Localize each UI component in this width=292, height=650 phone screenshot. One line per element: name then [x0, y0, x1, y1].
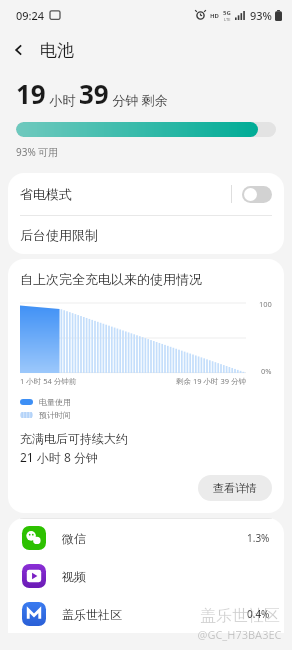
staticText: 5G — [223, 9, 231, 17]
staticText: LTE — [224, 17, 231, 22]
staticText: 自上次完全充电以来的使用情况 — [20, 271, 202, 287]
staticText: 剩余 19 小时 39 分钟 — [176, 376, 246, 386]
staticText: 视频 — [62, 569, 270, 584]
button[interactable]: 微信 — [8, 519, 284, 557]
staticText: 21 小时 8 分钟 — [20, 449, 98, 465]
staticText: 39 — [79, 76, 109, 111]
staticText: 盖乐世社区 — [62, 607, 247, 622]
staticText: 93% — [250, 8, 272, 23]
staticText: 预计时间 — [39, 410, 71, 420]
button[interactable]: 后台使用限制 — [8, 216, 284, 254]
button[interactable]: 盖乐世社区 — [8, 595, 284, 633]
staticText: 0% — [261, 366, 272, 376]
staticText: 100 — [259, 299, 272, 309]
staticText: 微信 — [62, 531, 247, 546]
staticText: 1 小时 54 分钟前 — [20, 376, 77, 386]
staticText: 省电模式 — [20, 186, 231, 202]
staticText: 查看详情 — [213, 481, 257, 495]
staticText: 盖乐世社区 — [200, 606, 280, 626]
button[interactable]: Back — [0, 31, 38, 69]
staticText: 小时 — [46, 91, 79, 109]
staticText: 电池 — [40, 40, 74, 61]
staticText: 电量使用 — [39, 397, 71, 407]
button[interactable]: 查看详情 — [198, 475, 272, 501]
staticText: 1.3% — [247, 531, 270, 545]
staticText: 93% 可用 — [16, 145, 59, 159]
staticText: 充满电后可持续大约 — [20, 431, 128, 446]
staticText: HD — [210, 12, 219, 20]
staticText: 09:24 — [16, 8, 45, 23]
button[interactable]: 视频 — [8, 557, 284, 595]
staticText: 0.4% — [247, 607, 270, 621]
staticText: 分钟 剩余 — [109, 91, 168, 109]
staticText: 19 — [16, 76, 46, 111]
button[interactable]: 省电模式 toggle — [242, 186, 272, 203]
staticText: 后台使用限制 — [20, 227, 98, 243]
button[interactable]: 省电模式 — [8, 173, 284, 215]
staticText: @GC_H73BA3EC — [197, 627, 282, 642]
